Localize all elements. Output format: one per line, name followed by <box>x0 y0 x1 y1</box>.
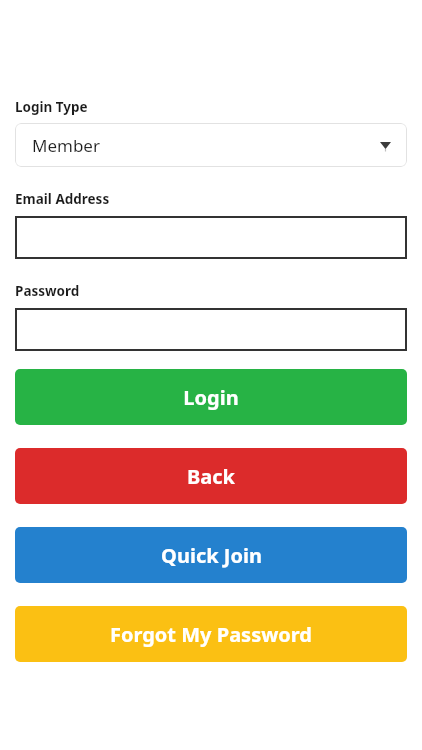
staticText: Login Type <box>15 98 88 116</box>
staticText: Quick Join <box>161 542 262 569</box>
button[interactable]: Quick Join <box>15 527 407 583</box>
button[interactable] <box>15 216 407 259</box>
button[interactable]: Forgot My Password <box>15 606 407 662</box>
other: Open login type dropdown <box>380 142 391 149</box>
button[interactable] <box>15 308 407 351</box>
staticText: Email Address <box>15 190 110 208</box>
staticText: Password <box>15 282 80 300</box>
button[interactable]: Back <box>15 448 407 504</box>
staticText: Back <box>187 463 235 490</box>
button[interactable]: Member <box>15 123 407 167</box>
staticText: Forgot My Password <box>110 621 312 648</box>
staticText: Login <box>183 384 239 411</box>
staticText: Member <box>32 134 100 157</box>
button[interactable]: Login <box>15 369 407 425</box>
